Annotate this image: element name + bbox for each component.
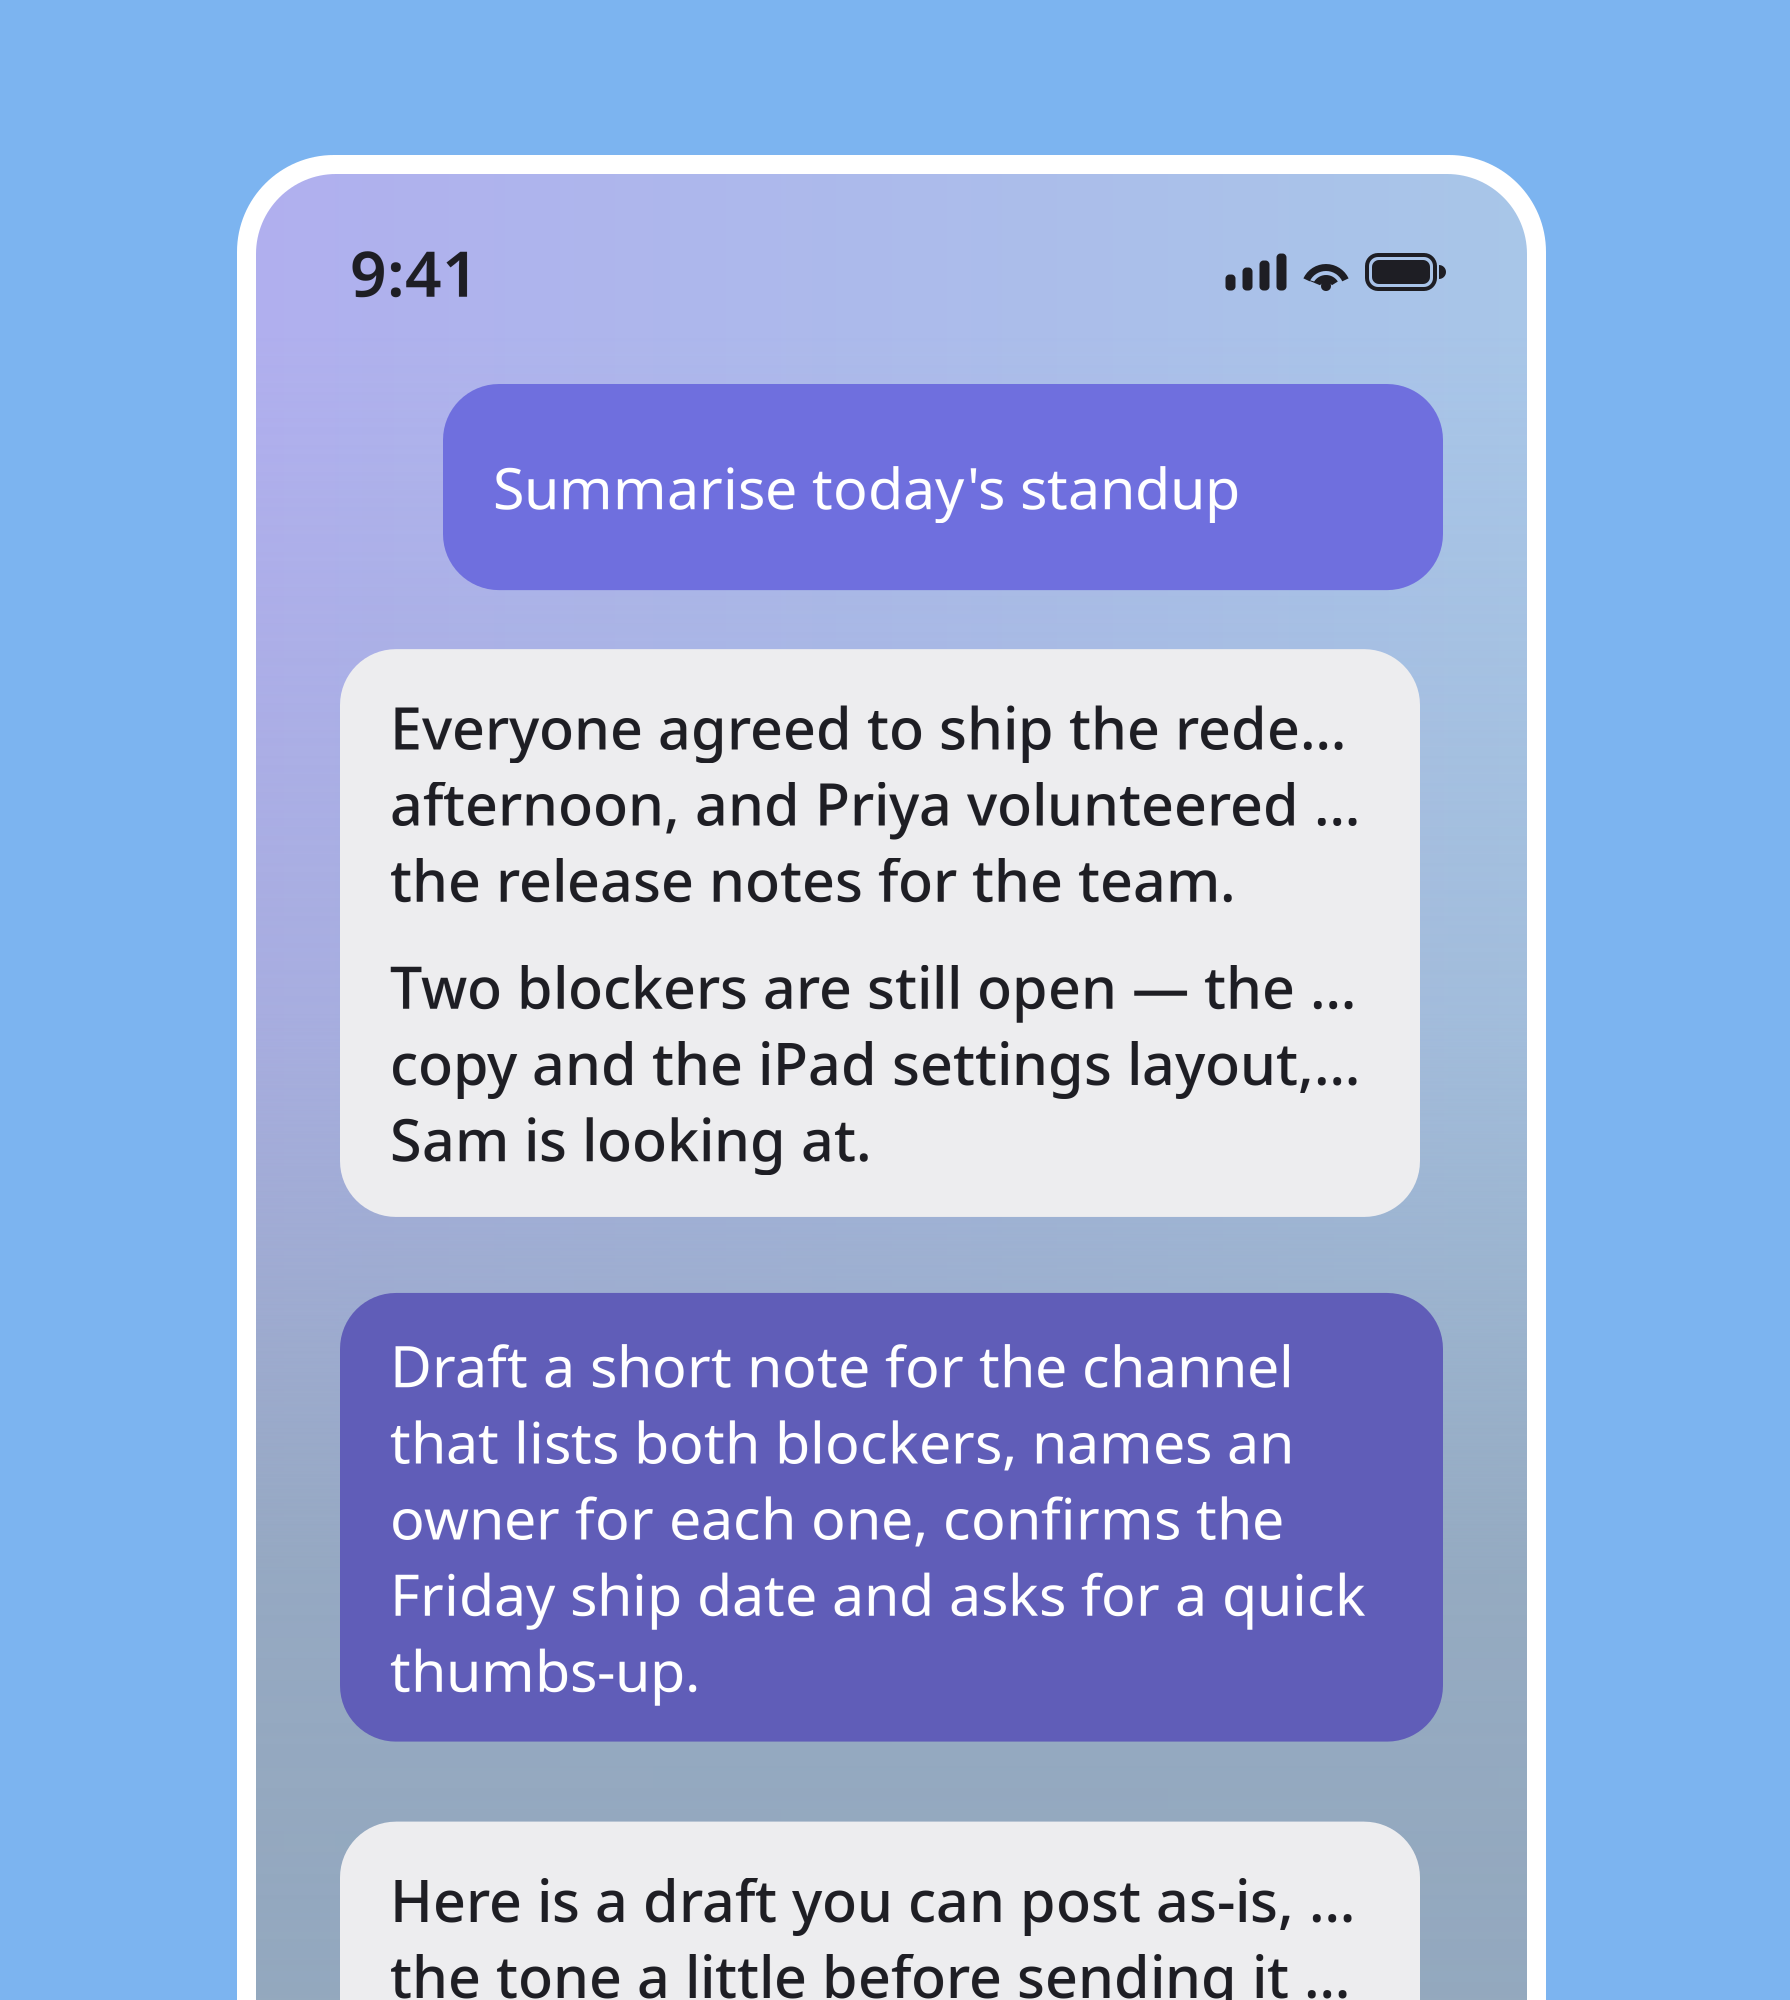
- staticText: Everyone agreed to ship the redesign on …: [390, 689, 1370, 765]
- button[interactable]: Summarise today's standup: [443, 384, 1443, 590]
- button[interactable]: Everyone agreed to ship the redesign on …: [340, 649, 1420, 1217]
- staticText: Two blockers are still open — the onboar…: [390, 948, 1370, 1025]
- button[interactable]: Draft a short note for the channel that …: [340, 1293, 1443, 1742]
- staticText: Sam is looking at.: [390, 1101, 872, 1177]
- staticText: Here is a draft you can post as-is, or s…: [390, 1862, 1370, 1938]
- staticText: Summarise today's standup: [493, 449, 1240, 525]
- staticText: copy and the iPad settings layout, which: [390, 1025, 1370, 1101]
- staticText: Draft a short note for the channel that …: [390, 1327, 1366, 1708]
- staticText: 9:41: [350, 229, 479, 314]
- staticText: the tone a little before sending it to t…: [390, 1938, 1370, 2000]
- staticText: afternoon, and Priya volunteered to writ…: [390, 765, 1370, 841]
- button[interactable]: Here is a draft you can post as-is, or s…: [340, 1822, 1420, 2000]
- staticText: the release notes for the team.: [390, 841, 1236, 917]
